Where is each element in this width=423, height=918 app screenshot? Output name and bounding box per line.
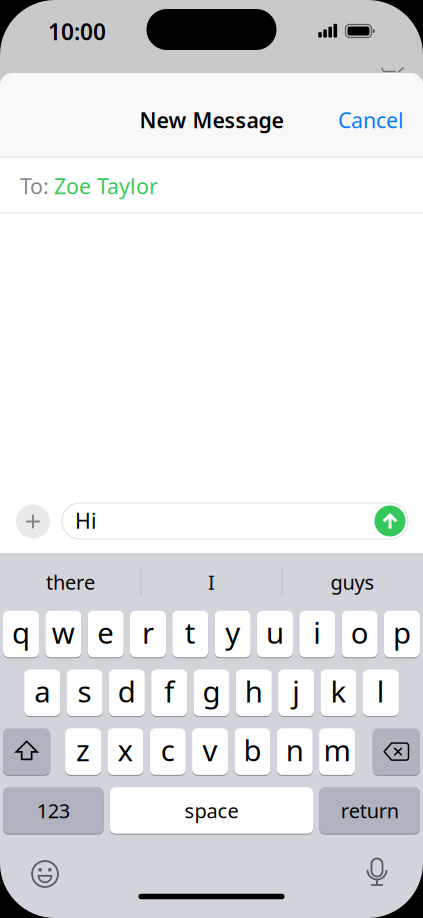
- staticText: x: [117, 730, 133, 769]
- staticText: u: [266, 613, 284, 652]
- staticText: m: [324, 730, 351, 769]
- staticText: t: [185, 613, 196, 652]
- staticText: Cancel: [338, 106, 404, 134]
- staticText: 123: [37, 797, 70, 824]
- staticText: guys: [330, 569, 374, 595]
- button[interactable]: 123: [3, 787, 104, 835]
- staticText: f: [164, 672, 174, 711]
- button[interactable]: p: [384, 611, 420, 658]
- button[interactable]: space: [110, 787, 313, 835]
- button[interactable]: Hi: [62, 503, 408, 539]
- button[interactable]: q: [3, 611, 39, 658]
- staticText: v: [203, 730, 218, 769]
- staticText: d: [118, 672, 136, 711]
- staticText: e: [97, 613, 114, 652]
- staticText: b: [243, 730, 261, 769]
- button[interactable]: To:: [0, 158, 423, 213]
- staticText: q: [12, 613, 30, 652]
- button[interactable]: w: [45, 611, 81, 658]
- staticText: To:: [20, 172, 49, 200]
- staticText: there: [46, 569, 95, 595]
- staticText: h: [245, 672, 263, 711]
- staticText: Hi: [75, 506, 97, 535]
- button[interactable]: x: [107, 728, 143, 776]
- staticText: k: [330, 672, 346, 711]
- staticText: c: [161, 730, 175, 769]
- staticText: w: [52, 613, 75, 652]
- staticText: y: [225, 613, 240, 652]
- button[interactable]: a: [24, 669, 60, 717]
- button[interactable]: k: [320, 669, 356, 717]
- button[interactable]: [3, 728, 50, 776]
- button[interactable]: return: [319, 787, 420, 835]
- button[interactable]: t: [172, 611, 208, 658]
- staticText: I: [208, 569, 215, 595]
- button[interactable]: [374, 505, 405, 536]
- button[interactable]: y: [215, 611, 251, 658]
- button[interactable]: m: [319, 728, 355, 776]
- button[interactable]: guys: [287, 562, 417, 602]
- button[interactable]: v: [192, 728, 228, 776]
- staticText: p: [393, 613, 411, 652]
- button[interactable]: b: [234, 728, 270, 776]
- button[interactable]: g: [193, 669, 229, 717]
- staticText: New Message: [139, 106, 283, 134]
- staticText: o: [351, 613, 369, 652]
- button[interactable]: r: [130, 611, 166, 658]
- button[interactable]: [30, 859, 60, 889]
- button[interactable]: h: [236, 669, 272, 717]
- button[interactable]: d: [109, 669, 145, 717]
- button[interactable]: i: [299, 611, 335, 658]
- staticText: a: [34, 672, 50, 711]
- button[interactable]: Cancel: [331, 98, 411, 142]
- staticText: s: [77, 672, 91, 711]
- staticText: Zoe Taylor: [54, 172, 158, 200]
- staticText: i: [313, 613, 321, 652]
- staticText: n: [286, 730, 304, 769]
- staticText: return: [341, 797, 399, 824]
- button[interactable]: [16, 504, 50, 538]
- button[interactable]: u: [257, 611, 293, 658]
- staticText: j: [292, 672, 300, 711]
- button[interactable]: [362, 857, 392, 887]
- button[interactable]: z: [65, 728, 101, 776]
- staticText: z: [76, 730, 90, 769]
- button[interactable]: o: [342, 611, 378, 658]
- button[interactable]: f: [151, 669, 187, 717]
- button[interactable]: j: [278, 669, 314, 717]
- button[interactable]: n: [277, 728, 313, 776]
- button[interactable]: I: [146, 562, 276, 602]
- staticText: l: [377, 672, 385, 711]
- button[interactable]: l: [363, 669, 399, 717]
- staticText: space: [184, 797, 238, 824]
- button[interactable]: there: [5, 562, 135, 602]
- staticText: g: [202, 672, 220, 711]
- staticText: r: [142, 613, 154, 652]
- button[interactable]: c: [150, 728, 186, 776]
- button[interactable]: e: [88, 611, 124, 658]
- button[interactable]: s: [66, 669, 102, 717]
- staticText: 10:00: [48, 16, 106, 46]
- button[interactable]: [373, 728, 420, 776]
